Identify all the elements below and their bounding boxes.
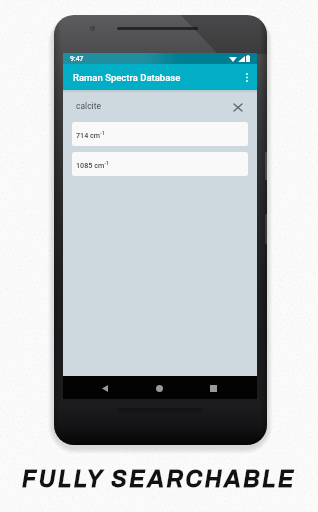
- staticText: 9:47: [70, 55, 84, 63]
- button[interactable]: More options: [237, 64, 257, 90]
- button[interactable]: 714 cm-1: [72, 122, 248, 146]
- staticText: 714 cm-1: [76, 130, 105, 140]
- staticText: 1085 cm-1: [76, 160, 109, 170]
- button[interactable]: 1085 cm-1: [72, 152, 248, 176]
- button[interactable]: Clear search: [230, 99, 246, 115]
- staticText: FULLY SEARCHABLE: [22, 467, 297, 492]
- button[interactable]: Back: [95, 378, 115, 398]
- button[interactable]: Recent apps: [203, 378, 223, 398]
- staticText: calcite: [76, 101, 101, 111]
- button[interactable]: Home: [149, 378, 169, 398]
- button[interactable]: calcite: [63, 90, 257, 122]
- staticText: Raman Spectra Database: [73, 72, 181, 83]
